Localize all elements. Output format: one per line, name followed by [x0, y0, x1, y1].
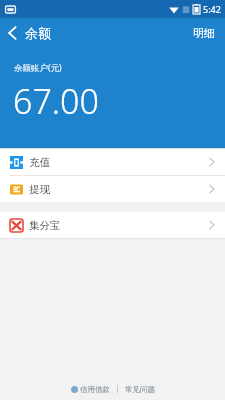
staticText: 常见问题 — [125, 385, 155, 394]
button[interactable]: 集分宝 — [0, 212, 225, 238]
staticText: 集分宝 — [29, 219, 61, 232]
button[interactable]: 提现 — [0, 176, 225, 202]
staticText: 67.00 — [13, 78, 99, 124]
button[interactable]: 充值 — [0, 149, 225, 175]
staticText: 余额账户(元) — [14, 62, 62, 74]
staticText: 充值 — [29, 156, 50, 169]
staticText: 提现 — [29, 183, 50, 196]
button[interactable]: Back — [0, 21, 59, 45]
staticText: 余额 — [25, 25, 51, 41]
staticText: 明细 — [193, 26, 215, 40]
staticText: 信用借款 — [80, 385, 110, 394]
button[interactable]: 信用借款 — [68, 383, 113, 396]
button[interactable]: 明细 — [183, 21, 225, 45]
button[interactable]: 常见问题 — [122, 383, 158, 396]
staticText: 5:42 — [203, 3, 221, 15]
other: Back — [8, 26, 17, 40]
